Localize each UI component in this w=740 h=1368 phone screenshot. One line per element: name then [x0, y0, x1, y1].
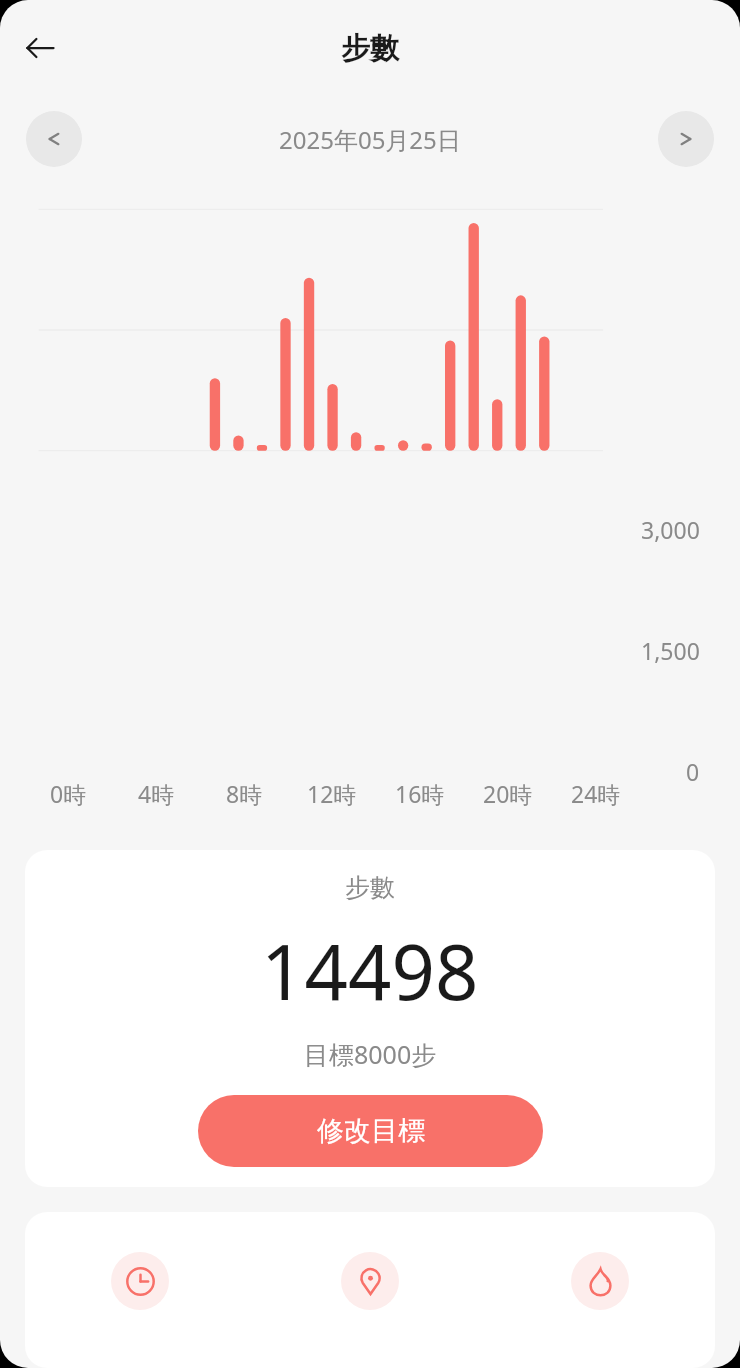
staticText: 8時: [226, 778, 263, 809]
staticText: 16時: [395, 778, 445, 809]
staticText: 4時: [138, 778, 175, 809]
staticText: 3,000: [641, 514, 700, 545]
button[interactable]: Previous day: [26, 111, 82, 167]
button[interactable]: 步數: [25, 850, 715, 1187]
button[interactable]: 修改目標: [198, 1095, 543, 1167]
staticText: 步數: [345, 872, 395, 903]
staticText: 14498: [261, 919, 479, 1023]
button[interactable]: Back: [8, 16, 72, 80]
button[interactable]: Next day: [658, 111, 714, 167]
staticText: 步數: [341, 30, 399, 67]
button[interactable]: Duration: [25, 1252, 255, 1320]
staticText: 20時: [483, 778, 533, 809]
staticText: 24時: [571, 778, 621, 809]
staticText: 0: [686, 756, 700, 787]
staticText: 1,500: [641, 635, 700, 666]
staticText: 0時: [50, 778, 87, 809]
staticText: 修改目標: [317, 1114, 425, 1148]
staticText: 目標8000步: [304, 1037, 437, 1071]
staticText: 12時: [307, 778, 357, 809]
button[interactable]: Distance: [255, 1252, 485, 1320]
staticText: 2025年05月25日: [279, 123, 461, 156]
button[interactable]: Calories: [485, 1252, 715, 1320]
